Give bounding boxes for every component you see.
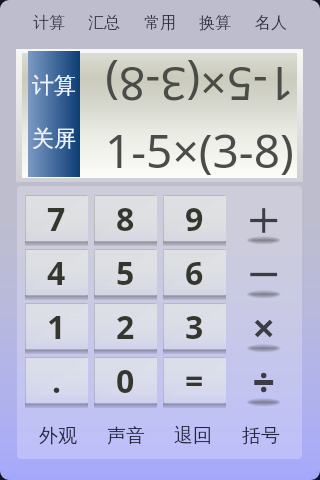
button[interactable]: . [25,357,88,404]
staticText: 外观 [39,424,77,448]
staticText: 3 [185,305,204,349]
button[interactable]: 8 [94,195,157,242]
button[interactable]: 外观 [31,416,85,456]
button[interactable]: 2 [94,303,157,350]
staticText: . [52,359,61,403]
staticText: 计算 [32,72,76,100]
staticText: 4 [47,251,66,295]
staticText: 1-5×(3-8) [105,119,294,175]
button[interactable]: 1 [25,303,88,350]
staticText: 0 [116,359,135,403]
button[interactable]: 4 [25,249,88,296]
button[interactable]: = [163,357,226,404]
button[interactable]: 3 [163,303,226,350]
staticText: 常用 [144,13,176,33]
button[interactable]: 7 [25,195,88,242]
button[interactable]: 计算 [28,51,80,177]
staticText: 声音 [107,424,145,448]
button[interactable]: 5 [94,249,157,296]
button[interactable]: 退回 [166,416,220,456]
staticText: 5 [116,251,135,295]
staticText: 1-5×(3-8) [105,57,294,116]
button[interactable]: Minus [237,249,292,296]
button[interactable]: 汇总 [81,3,127,43]
staticText: = [185,359,204,403]
staticText: 8 [116,197,135,241]
button[interactable]: 计算 [26,3,72,43]
staticText: 1 [47,305,66,349]
staticText: 汇总 [88,13,120,33]
staticText: 2 [116,305,135,349]
staticText: 退回 [174,424,212,448]
staticText: 括号 [242,424,280,448]
staticText: 7 [47,197,66,241]
button[interactable]: 换算 [192,3,238,43]
button[interactable]: Divide [237,357,292,404]
staticText: 9 [185,197,204,241]
button[interactable]: 常用 [137,3,183,43]
staticText: 换算 [199,13,231,33]
button[interactable]: 9 [163,195,226,242]
button[interactable]: 括号 [234,416,288,456]
button[interactable]: Multiply [237,303,292,350]
button[interactable]: 6 [163,249,226,296]
button[interactable]: 0 [94,357,157,404]
staticText: 名人 [255,13,287,33]
staticText: 6 [185,251,204,295]
button[interactable]: Plus [237,195,292,242]
button[interactable]: 声音 [99,416,153,456]
button[interactable]: 名人 [248,3,294,43]
staticText: 关屏 [32,125,76,153]
staticText: 计算 [33,13,65,33]
